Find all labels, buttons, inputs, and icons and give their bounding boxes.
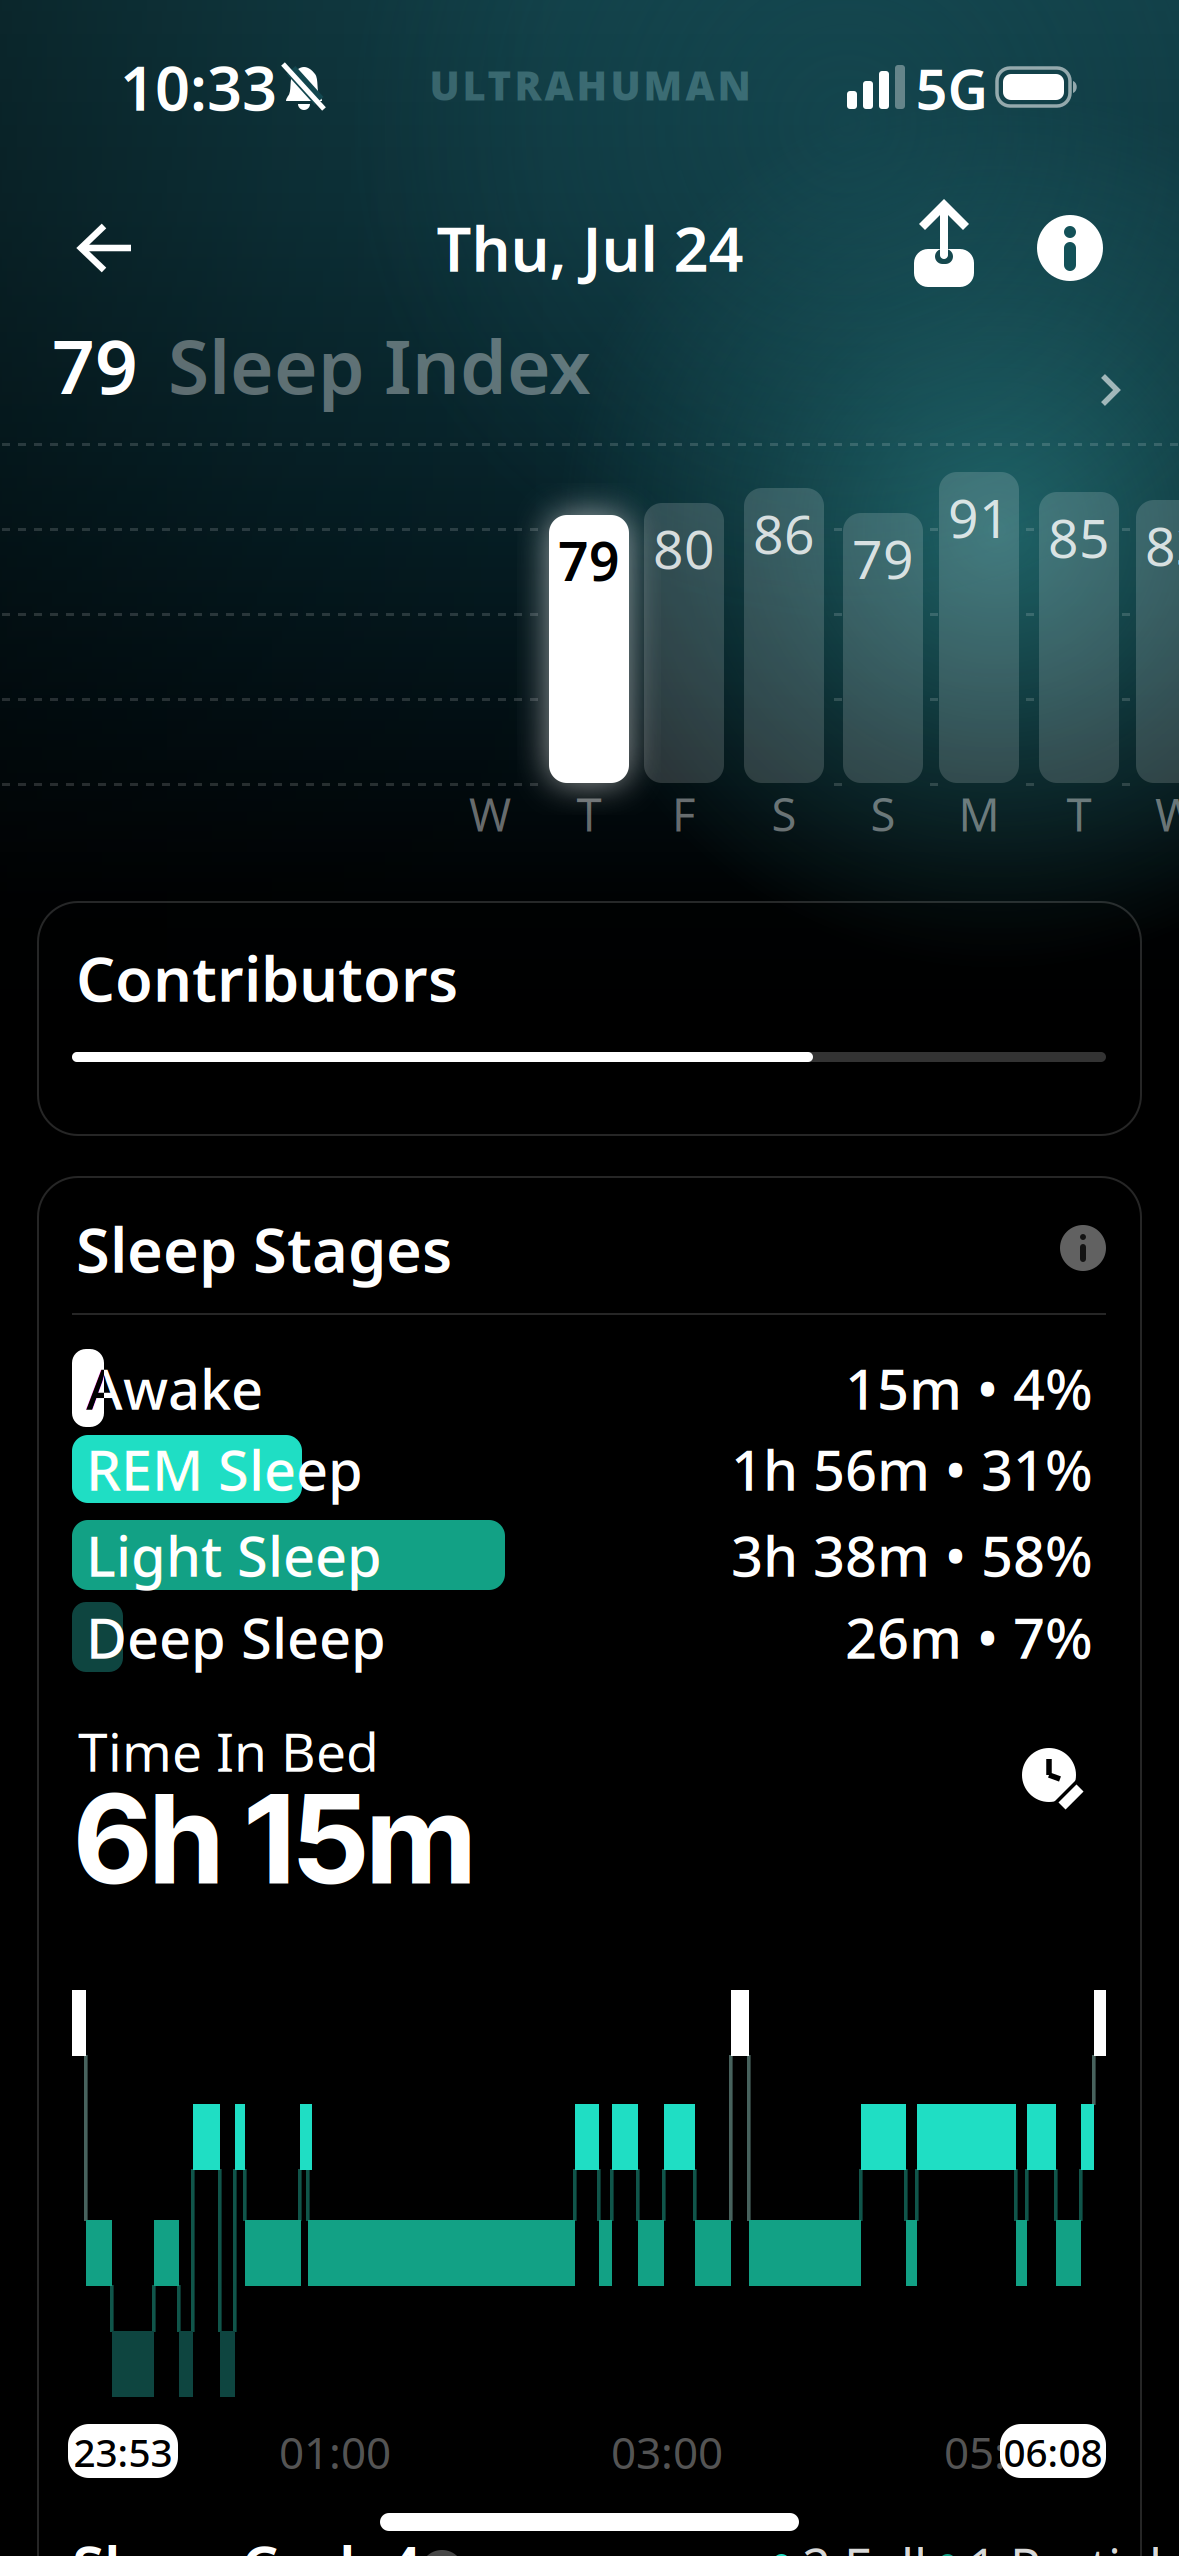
staticText: 6h 15m — [74, 1765, 475, 1913]
button[interactable]: 79 — [549, 515, 629, 783]
staticText: 2 Full — [802, 2532, 927, 2556]
staticText: 3h 38m • 58% — [731, 1518, 1093, 1592]
staticText: 23:53 — [73, 2426, 172, 2478]
staticText: 4 — [388, 2528, 422, 2556]
staticText: M — [958, 784, 999, 844]
staticText: Time In Bed — [78, 1716, 379, 1786]
button[interactable]: 80 — [644, 503, 724, 783]
staticText: S — [870, 784, 895, 844]
button[interactable]: Back — [71, 217, 141, 279]
button[interactable]: 85 — [1039, 492, 1119, 783]
button[interactable]: Sleep Index details — [38, 330, 1141, 430]
staticText: 1 Partial — [968, 2532, 1162, 2556]
staticText: Contributors — [76, 937, 458, 1019]
button[interactable]: Info — [1037, 215, 1103, 281]
staticText: 05:00 — [944, 2423, 1056, 2481]
button[interactable]: Sleep stages info — [1060, 1225, 1106, 1271]
staticText: 01:00 — [279, 2423, 391, 2481]
staticText: 91 — [948, 482, 1010, 553]
staticText: 86 — [753, 498, 815, 569]
button[interactable]: Edit time in bed — [1020, 1746, 1092, 1818]
button[interactable]: 79 — [843, 513, 923, 783]
staticText: Sleep Cycles — [72, 2528, 419, 2556]
staticText: Sleep Stages — [76, 1208, 452, 1290]
staticText: 10:33 — [120, 46, 277, 128]
staticText: 15m • 4% — [845, 1351, 1093, 1425]
staticText: 26m • 7% — [845, 1600, 1093, 1674]
button[interactable]: 86 — [744, 488, 824, 783]
staticText: Awake — [86, 1351, 263, 1425]
staticText: F — [672, 784, 696, 844]
staticText: ULTRAHUMAN — [429, 58, 750, 111]
staticText: T — [576, 784, 601, 844]
button[interactable]: 91 — [939, 472, 1019, 783]
staticText: 85 — [1048, 502, 1110, 573]
button[interactable]: Share — [914, 199, 974, 287]
staticText: T — [1066, 784, 1091, 844]
staticText: 79 — [558, 525, 620, 596]
staticText: S — [771, 784, 796, 844]
staticText: 5G — [915, 51, 988, 125]
staticText: 79 — [852, 523, 914, 594]
staticText: 03:00 — [611, 2423, 723, 2481]
staticText: 83 — [1145, 510, 1179, 581]
staticText: W — [469, 784, 511, 844]
staticText: 80 — [653, 513, 715, 584]
staticText: W — [1155, 784, 1179, 844]
staticText: 79 — [52, 315, 138, 415]
staticText: REM Sleep — [86, 1432, 363, 1506]
staticText: Thu, Jul 24 — [436, 207, 743, 289]
button[interactable]: 83 — [1136, 500, 1179, 783]
staticText: 1h 56m • 31% — [731, 1432, 1093, 1506]
staticText: Sleep Index — [168, 315, 591, 415]
staticText: Light Sleep — [86, 1518, 382, 1592]
staticText: 06:08 — [1003, 2426, 1102, 2478]
staticText: Deep Sleep — [86, 1600, 386, 1674]
